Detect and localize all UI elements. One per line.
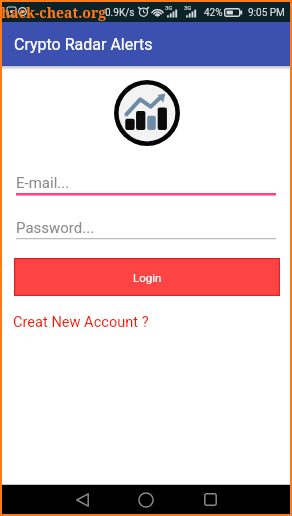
staticText: hack-cheat.org	[1, 3, 107, 22]
button[interactable]: Recents	[194, 485, 226, 514]
button[interactable]: Creat New Account ?	[13, 313, 149, 330]
staticText: E-mail...	[16, 174, 70, 192]
staticText: 3G	[165, 4, 173, 11]
staticText: Creat New Account ?	[13, 313, 149, 330]
staticText: 42%	[204, 7, 223, 19]
staticText: Crypto Radar Alerts	[14, 35, 153, 54]
staticText: 3G	[184, 4, 192, 11]
button[interactable]: Back	[66, 485, 98, 514]
staticText: 0.9K/s	[105, 7, 135, 19]
staticText: Password...	[16, 219, 95, 237]
button[interactable]: Home	[130, 485, 162, 514]
button[interactable]: Login	[14, 258, 280, 296]
staticText: Login	[133, 271, 162, 284]
staticText: 9:05 PM	[248, 7, 285, 19]
